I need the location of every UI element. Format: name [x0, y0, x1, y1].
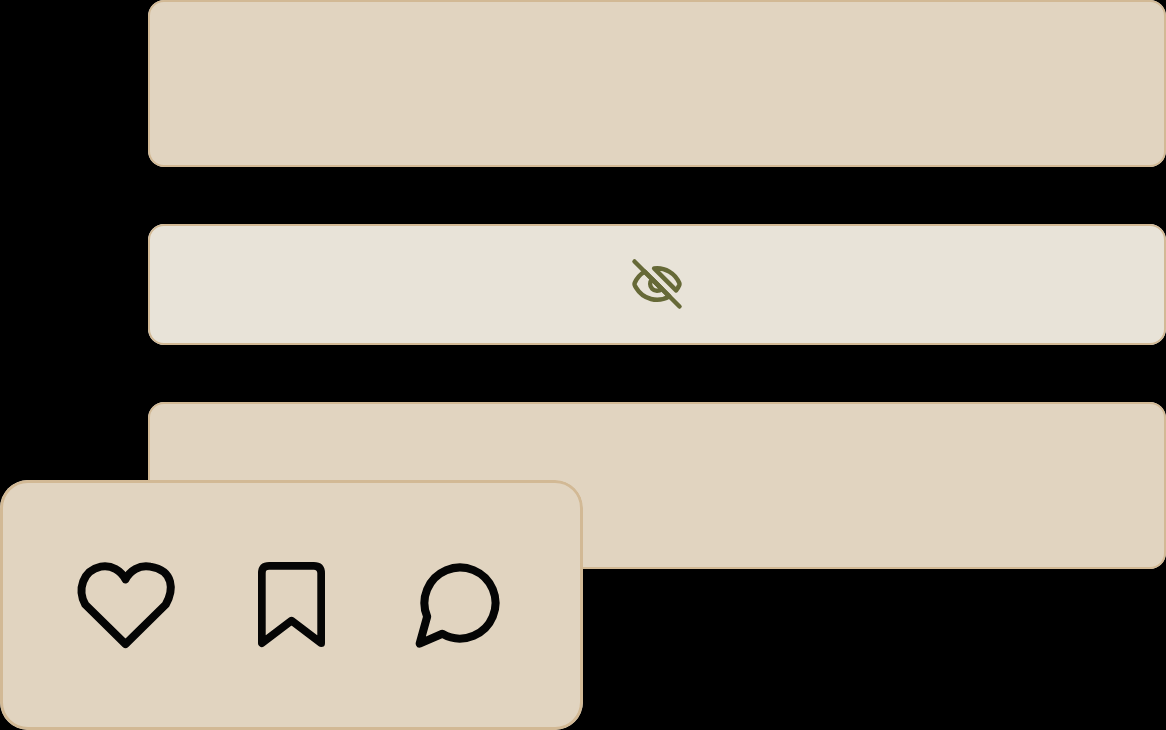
button[interactable]: Like [77, 561, 174, 648]
button[interactable] [148, 402, 1166, 569]
button[interactable]: Hidden [630, 257, 684, 311]
button[interactable] [148, 0, 1166, 167]
button[interactable]: Save [258, 562, 325, 647]
button[interactable]: Comment [415, 562, 500, 647]
button[interactable] [148, 224, 1166, 345]
